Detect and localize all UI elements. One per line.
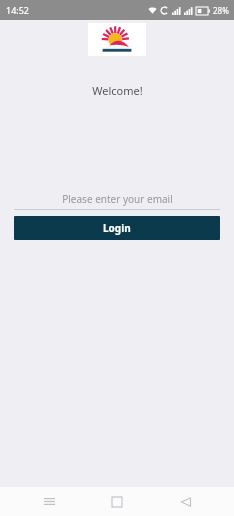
button[interactable]: Home: [97, 487, 137, 516]
button[interactable]: Please enter your email: [14, 190, 220, 210]
button[interactable]: Login: [14, 216, 220, 240]
button[interactable]: Recent apps: [29, 487, 69, 516]
staticText: Please enter your email: [62, 192, 173, 206]
staticText: 14:52: [6, 4, 30, 16]
button[interactable]: Back: [166, 487, 206, 516]
staticText: 28%: [213, 5, 229, 16]
staticText: Welcome!: [92, 83, 143, 98]
staticText: Login: [103, 221, 131, 235]
